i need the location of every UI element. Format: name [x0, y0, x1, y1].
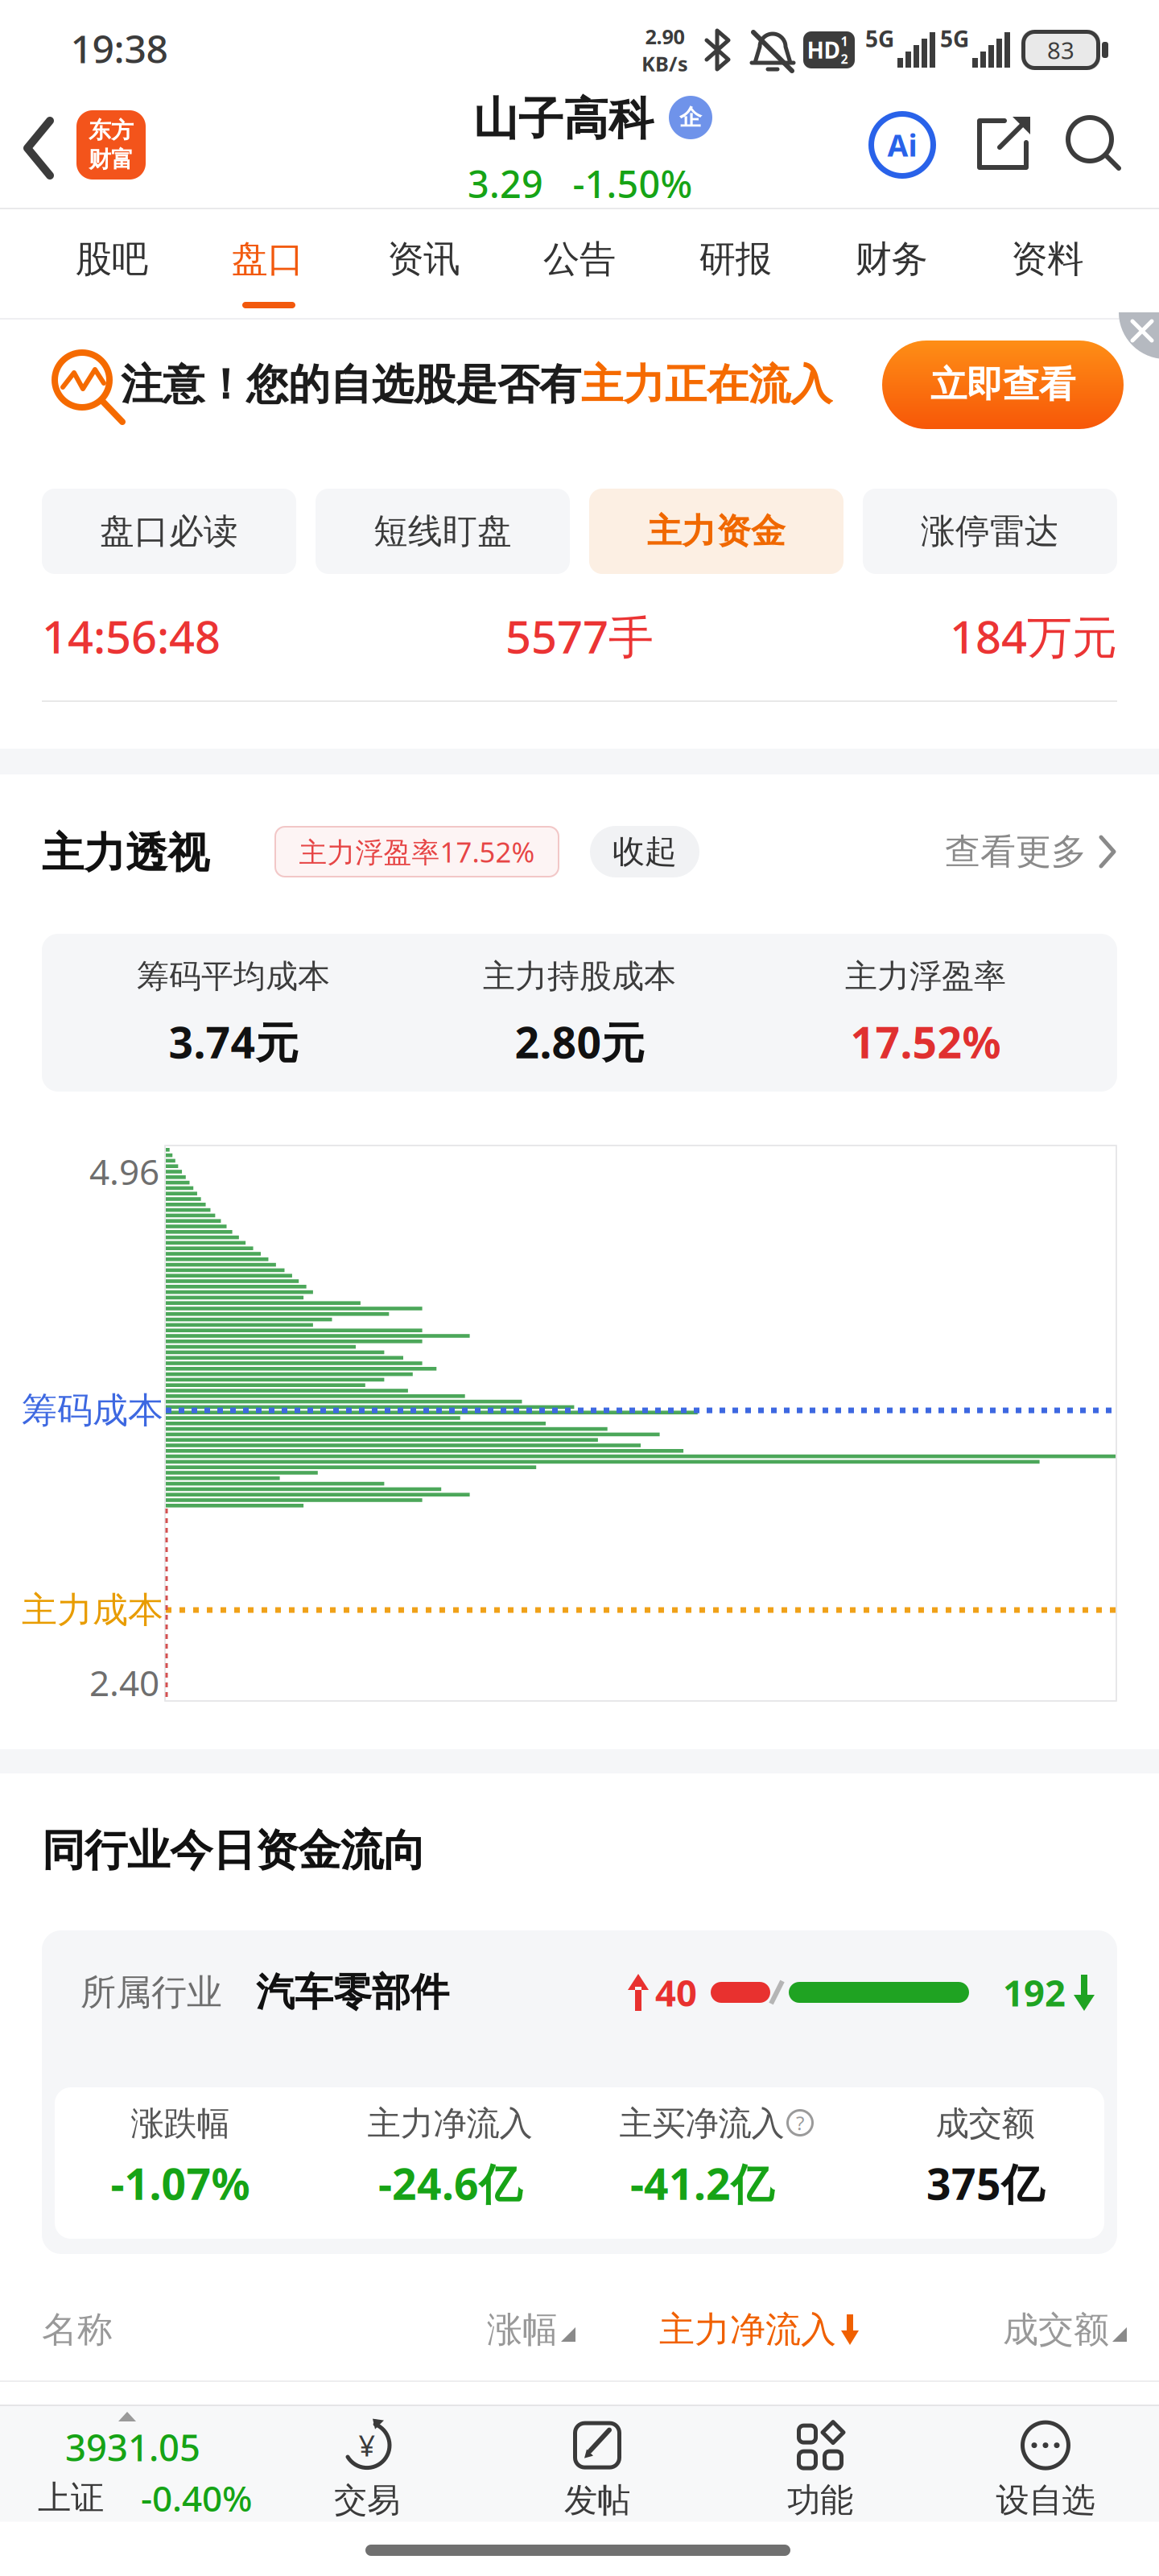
button[interactable]: 盘口必读	[42, 489, 296, 574]
staticText: 17.52%	[850, 1013, 1001, 1070]
staticText: 财务	[855, 237, 928, 282]
button[interactable]: 涨幅	[487, 2308, 575, 2351]
button[interactable]: Share	[975, 117, 1033, 173]
staticText: -1.50%	[573, 159, 693, 208]
button[interactable]: 成交额	[1003, 2308, 1127, 2351]
staticText: 东方	[89, 116, 134, 144]
staticText: 公告	[543, 237, 616, 282]
staticText: 上证	[38, 2477, 104, 2518]
button[interactable]: 盘口	[190, 215, 346, 303]
staticText: -24.6亿	[378, 2155, 522, 2212]
button[interactable]: 立即查看	[882, 341, 1124, 429]
button[interactable]: 主力资金	[589, 489, 843, 574]
staticText: 股吧	[76, 237, 148, 282]
button[interactable]: 3931.05	[0, 2404, 290, 2524]
staticText: 19:38	[70, 23, 168, 74]
staticText: -1.07%	[111, 2155, 250, 2212]
button[interactable]: 短线盯盘	[316, 489, 570, 574]
staticText: 短线盯盘	[373, 510, 512, 552]
staticText: 查看更多	[945, 830, 1087, 873]
staticText: -41.2亿	[630, 2155, 773, 2212]
button[interactable]: 功能	[732, 2409, 909, 2530]
staticText: 4.96	[89, 1148, 159, 1195]
staticText: Ai	[887, 125, 917, 165]
staticText: 注意！您的自选股是否有	[121, 359, 581, 411]
staticText: 2.80元	[515, 1013, 644, 1070]
staticText: 同行业今日资金流向	[42, 1824, 426, 1877]
button[interactable]: 资料	[969, 215, 1125, 303]
staticText: 2.40	[89, 1659, 159, 1706]
button[interactable]: 研报	[657, 215, 813, 303]
staticText: 主力浮盈率	[845, 957, 1006, 996]
staticText: 交易	[334, 2480, 400, 2521]
staticText: 发帖	[564, 2480, 630, 2521]
staticText: 5G	[865, 24, 894, 54]
staticText: 涨跌幅	[131, 2103, 230, 2144]
staticText: 成交额	[1003, 2308, 1109, 2351]
staticText: 盘口	[231, 237, 304, 282]
staticText: 所属行业	[80, 1971, 222, 2014]
staticText: 主力持股成本	[483, 957, 676, 996]
staticText: 涨幅	[487, 2308, 558, 2351]
staticText: 83	[1047, 34, 1074, 66]
staticText: 5G	[940, 24, 969, 54]
button[interactable]: AI	[868, 111, 936, 179]
staticText: 立即查看	[930, 362, 1075, 407]
staticText: 企	[679, 104, 702, 131]
button[interactable]: 涨停雷达	[863, 489, 1117, 574]
staticText: 山子高科	[473, 91, 654, 147]
staticText: 主力成本	[22, 1588, 163, 1632]
staticText: 主力浮盈率17.52%	[299, 833, 535, 870]
button[interactable]: 资讯	[346, 215, 502, 303]
staticText: 成交额	[936, 2103, 1035, 2144]
button[interactable]: 收起	[590, 826, 699, 877]
staticText: 1	[841, 33, 848, 50]
staticText: 5577手	[505, 606, 654, 666]
button[interactable]: 设自选	[957, 2409, 1134, 2530]
staticText: 主力资金	[647, 510, 786, 552]
staticText: 资讯	[387, 237, 460, 282]
staticText: 财富	[89, 146, 134, 173]
staticText: 40	[655, 1968, 697, 2017]
staticText: 192	[1003, 1968, 1066, 2017]
staticText: 主力净流入	[659, 2308, 836, 2351]
button[interactable]: Back	[14, 108, 63, 188]
staticText: 主力透视	[42, 828, 209, 879]
button[interactable]: ¥	[278, 2409, 456, 2530]
staticText: 资料	[1011, 237, 1083, 282]
staticText: HD	[807, 35, 840, 65]
button[interactable]: 公告	[502, 215, 657, 303]
staticText: 2.90	[645, 23, 685, 50]
staticText: 184万元	[950, 606, 1117, 666]
staticText: 3.74元	[169, 1013, 298, 1070]
button[interactable]: Search	[1064, 115, 1125, 175]
staticText: 14:56:48	[42, 606, 221, 666]
staticText: -0.40%	[141, 2474, 252, 2521]
button[interactable]: Close	[0, 0, 1159, 2576]
button[interactable]: 财务	[813, 215, 969, 303]
staticText: 筹码平均成本	[137, 957, 330, 996]
staticText: 主买净流入	[619, 2103, 784, 2144]
button[interactable]: 主力净流入	[659, 2308, 860, 2351]
staticText: 3.29	[468, 159, 543, 208]
staticText: 设自选	[996, 2480, 1095, 2521]
staticText: 盘口必读	[100, 510, 238, 552]
staticText: 筹码成本	[22, 1389, 163, 1432]
staticText: 研报	[699, 237, 772, 282]
staticText: KB/s	[641, 50, 688, 77]
button[interactable]: 查看更多	[945, 830, 1117, 873]
staticText: 收起	[612, 832, 677, 871]
staticText: 涨停雷达	[921, 510, 1059, 552]
staticText: 功能	[787, 2480, 853, 2521]
staticText: 2	[841, 50, 848, 67]
staticText: ¥	[359, 2426, 375, 2465]
button[interactable]: 发帖	[509, 2409, 686, 2530]
staticText: 375亿	[926, 2155, 1044, 2212]
staticText: 3931.05	[65, 2423, 200, 2471]
staticText: 主力净流入	[367, 2103, 532, 2144]
staticText: 名称	[42, 2308, 113, 2351]
button[interactable]: 股吧	[34, 215, 190, 303]
staticText: ?	[796, 2110, 804, 2136]
staticText: 汽车零部件	[256, 1969, 449, 2016]
staticText: 主力正在流入	[581, 359, 832, 411]
